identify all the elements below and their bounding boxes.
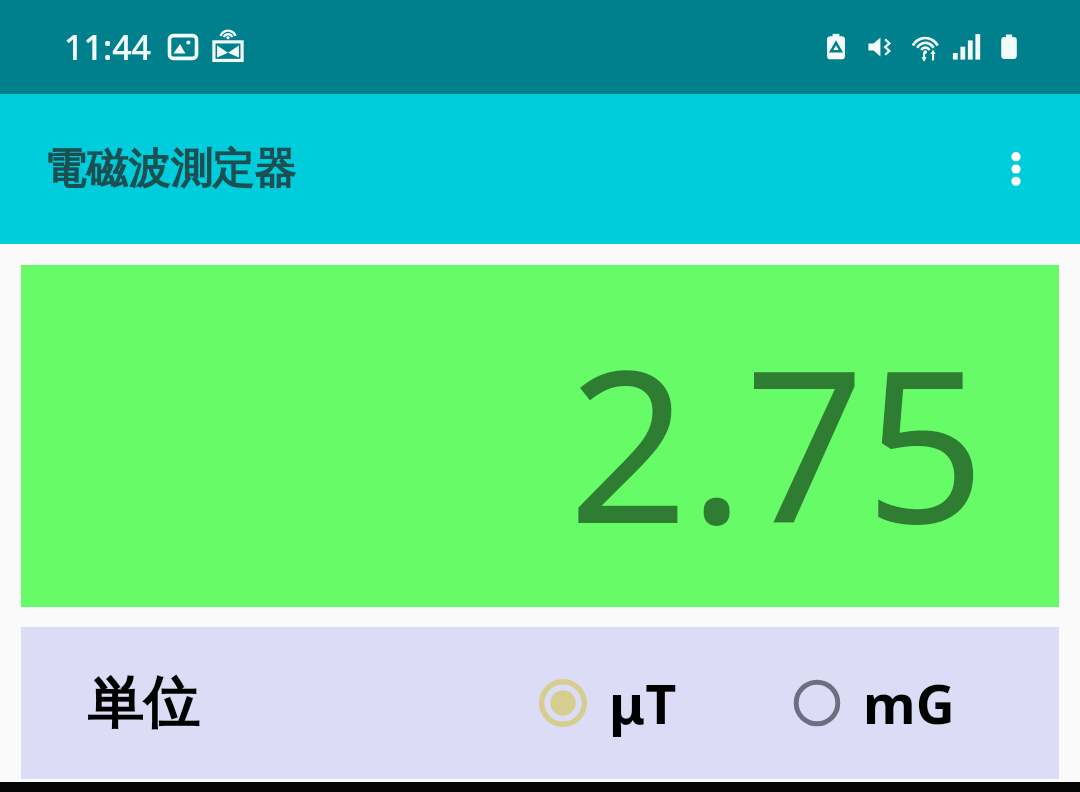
staticText: 電磁波測定器 — [44, 143, 296, 196]
staticText: 単位 — [87, 668, 199, 739]
staticText: 2.75 — [21, 299, 985, 585]
staticText: mG — [863, 666, 955, 740]
staticText: μT — [609, 666, 677, 740]
button[interactable]: μT — [533, 660, 681, 746]
button[interactable]: mG — [787, 660, 959, 746]
button[interactable]: 2.75 — [21, 265, 1059, 607]
button[interactable]: More options — [976, 129, 1056, 209]
staticText: 11:44 — [64, 24, 152, 70]
